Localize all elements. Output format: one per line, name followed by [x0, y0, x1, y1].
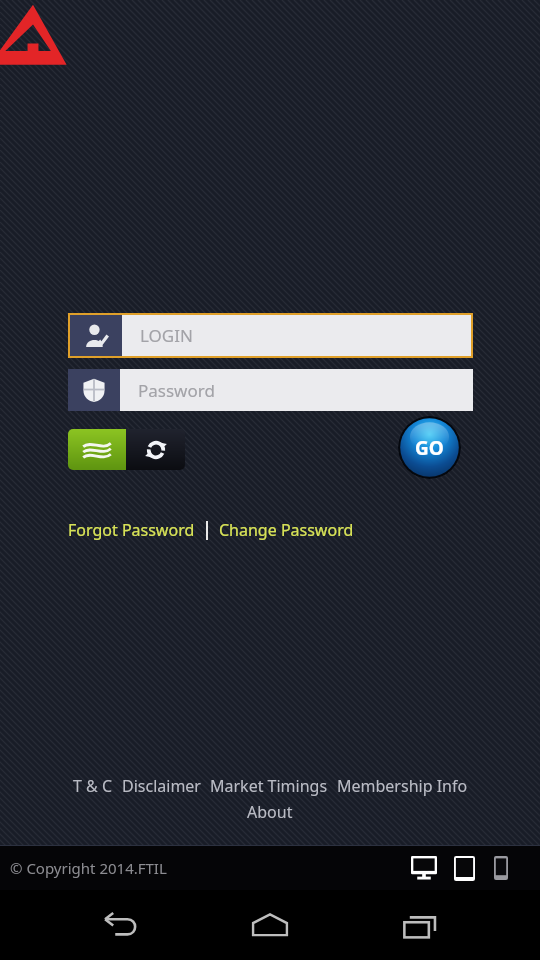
staticText: LOGIN: [140, 324, 193, 347]
button[interactable]: Password: [68, 369, 473, 411]
staticText: Membership Info: [337, 775, 468, 797]
staticText: Market Timings: [210, 775, 328, 797]
button[interactable]: GO: [398, 416, 461, 479]
button[interactable]: Market Timings: [210, 775, 328, 797]
button[interactable]: Desktop view: [404, 848, 444, 888]
button[interactable]: Mobile view: [484, 851, 518, 885]
button[interactable]: Membership Info: [337, 775, 468, 797]
button[interactable]: Disclaimer: [122, 775, 201, 797]
staticText: Disclaimer: [122, 775, 201, 797]
staticText: Change Password: [219, 519, 354, 541]
staticText: © Copyright 2014.FTIL: [10, 858, 167, 878]
button[interactable]: LOGIN: [70, 315, 471, 356]
button[interactable]: Forgot Password: [68, 519, 195, 541]
button[interactable]: T & C: [73, 775, 113, 797]
staticText: T & C: [73, 775, 113, 797]
staticText: Forgot Password: [68, 519, 195, 541]
button[interactable]: Back: [90, 895, 150, 955]
button[interactable]: About: [247, 801, 293, 823]
button[interactable]: Home: [240, 895, 300, 955]
button[interactable]: Recent apps: [390, 895, 450, 955]
button[interactable]: Tablet view: [444, 848, 484, 888]
staticText: About: [247, 801, 293, 823]
button[interactable]: Change Password: [219, 519, 354, 541]
button[interactable]: Captcha image: [68, 429, 126, 470]
staticText: GO: [415, 435, 444, 461]
button[interactable]: Refresh captcha: [126, 429, 185, 470]
staticText: Password: [138, 379, 215, 402]
